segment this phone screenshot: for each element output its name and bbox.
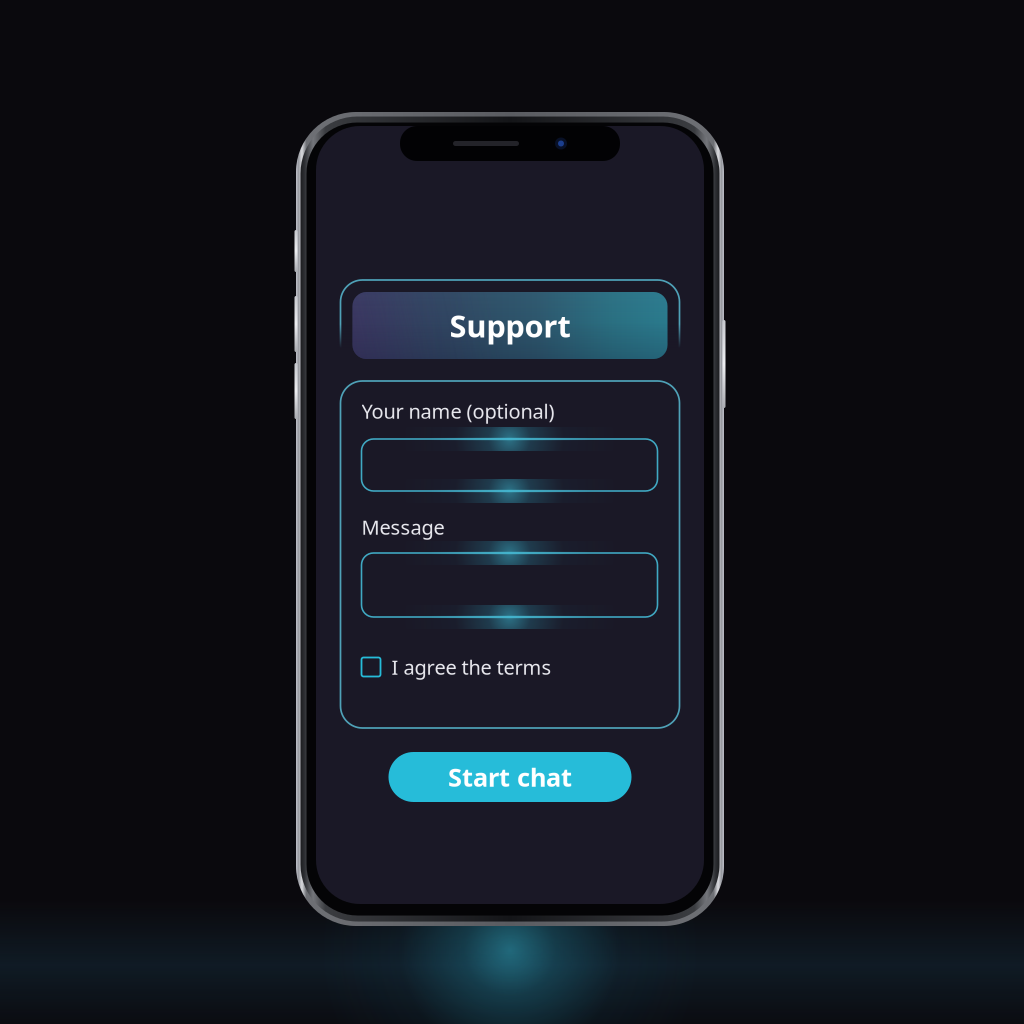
- staticText: Your name (optional): [361, 398, 554, 424]
- staticText: Start chat: [448, 760, 572, 794]
- staticText: Message: [361, 514, 444, 540]
- staticText: Support: [449, 305, 570, 346]
- button[interactable]: Start chat: [388, 752, 631, 802]
- button[interactable]: I agree the terms: [361, 649, 551, 685]
- staticText: I agree the terms: [391, 654, 551, 680]
